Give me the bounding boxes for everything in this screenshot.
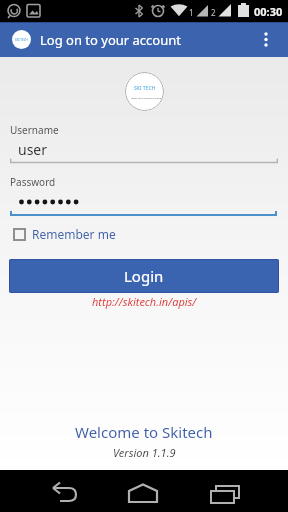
button[interactable] [256,22,288,57]
staticText: Welcome to Skitech [75,422,213,442]
staticText: Password [10,175,56,189]
staticText: Login [124,266,164,286]
button[interactable] [120,470,168,512]
staticText: 2 [211,7,216,18]
staticText: SKI TECH [15,38,28,42]
button[interactable]: Username [0,120,288,165]
staticText: SKI TECH [134,85,156,92]
button[interactable]: http://skitech.in/apis/ [0,294,288,309]
staticText: Version 1.1.9 [113,445,176,460]
staticText: Username [10,123,59,137]
button[interactable]: Login [9,259,279,293]
staticText: 1 [189,7,194,18]
staticText: 00:30 [254,4,283,19]
staticText: user [18,140,48,159]
staticText: ideas that influence world [131,96,162,99]
button[interactable] [40,470,88,512]
staticText: Log on to your account [40,31,181,49]
button[interactable]: Password [0,173,288,217]
button[interactable] [200,470,248,512]
staticText: http://skitech.in/apis/ [92,294,197,309]
button[interactable]: Remember me [10,224,170,244]
staticText: Remember me [32,226,116,242]
